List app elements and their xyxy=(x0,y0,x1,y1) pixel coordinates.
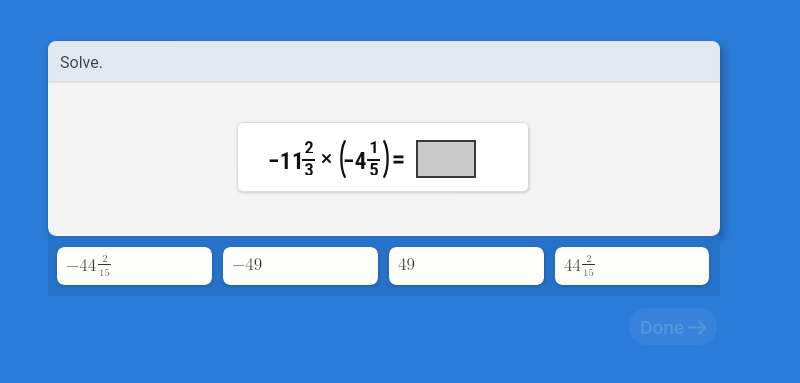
staticText: Done xyxy=(640,316,684,338)
button[interactable]: −44 xyxy=(57,247,212,285)
staticText: −44 xyxy=(66,252,97,276)
staticText: 15 xyxy=(583,265,594,278)
staticText: −4 xyxy=(343,147,367,175)
staticText: Solve. xyxy=(60,53,103,72)
button[interactable]: −49 xyxy=(223,247,378,285)
staticText: 3 xyxy=(304,158,314,175)
staticText: 2 xyxy=(102,251,108,264)
staticText: −49 xyxy=(232,251,263,275)
button[interactable]: Done xyxy=(629,308,717,345)
staticText: 44 xyxy=(564,252,581,276)
staticText: 1 xyxy=(369,136,379,153)
staticText: 2 xyxy=(586,251,592,264)
staticText: 5 xyxy=(369,158,379,175)
staticText: 49 xyxy=(398,251,415,275)
staticText: −11 xyxy=(268,147,304,175)
staticText: 2 xyxy=(304,136,314,153)
button[interactable]: 44 xyxy=(555,247,709,285)
button[interactable]: 49 xyxy=(389,247,544,285)
staticText: 15 xyxy=(99,265,110,278)
